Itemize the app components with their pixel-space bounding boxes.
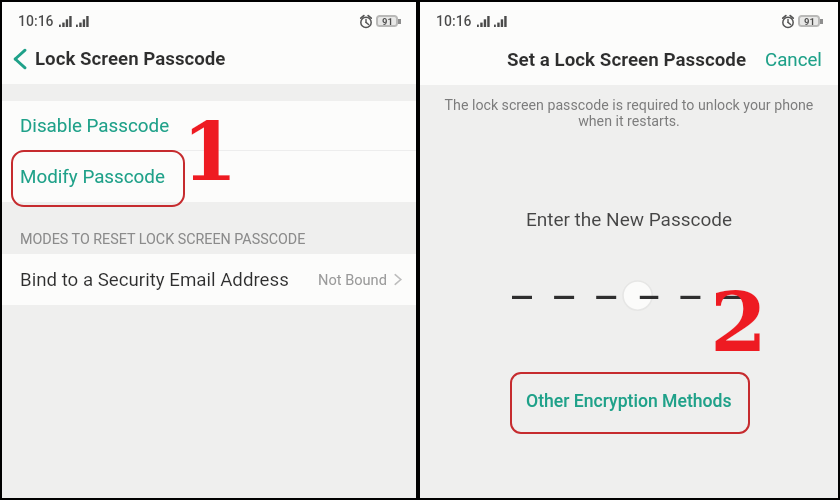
button[interactable]: Cancel [753, 39, 838, 81]
button[interactable]: Back [4, 40, 36, 78]
staticText: Modify Passcode [20, 166, 165, 188]
staticText: when it restarts. [420, 113, 838, 130]
staticText: 2 [710, 274, 768, 370]
staticText: MODES TO RESET LOCK SCREEN PASSCODE [20, 231, 306, 248]
staticText: 91 [804, 16, 815, 27]
button[interactable]: Disable Passcode [2, 101, 416, 150]
staticText: Set a Lock Screen Passcode [507, 49, 747, 71]
staticText: The lock screen passcode is required to … [420, 97, 838, 114]
staticText: Not Bound [318, 271, 387, 288]
staticText: Cancel [765, 49, 822, 71]
staticText: Enter the New Passcode [420, 208, 838, 230]
staticText: 91 [382, 16, 393, 27]
staticText: Bind to a Security Email Address [20, 269, 289, 291]
staticText: 1 [182, 105, 238, 199]
button[interactable]: Other Encryption Methods [509, 370, 749, 432]
staticText: 10:16 [436, 13, 472, 29]
staticText: Disable Passcode [20, 115, 170, 137]
staticText: Other Encryption Methods [526, 391, 732, 412]
staticText: 10:16 [18, 13, 54, 29]
staticText: Lock Screen Passcode [35, 48, 226, 70]
button[interactable]: Modify Passcode [2, 151, 416, 202]
button[interactable]: Bind to a Security Email Address [2, 254, 416, 305]
